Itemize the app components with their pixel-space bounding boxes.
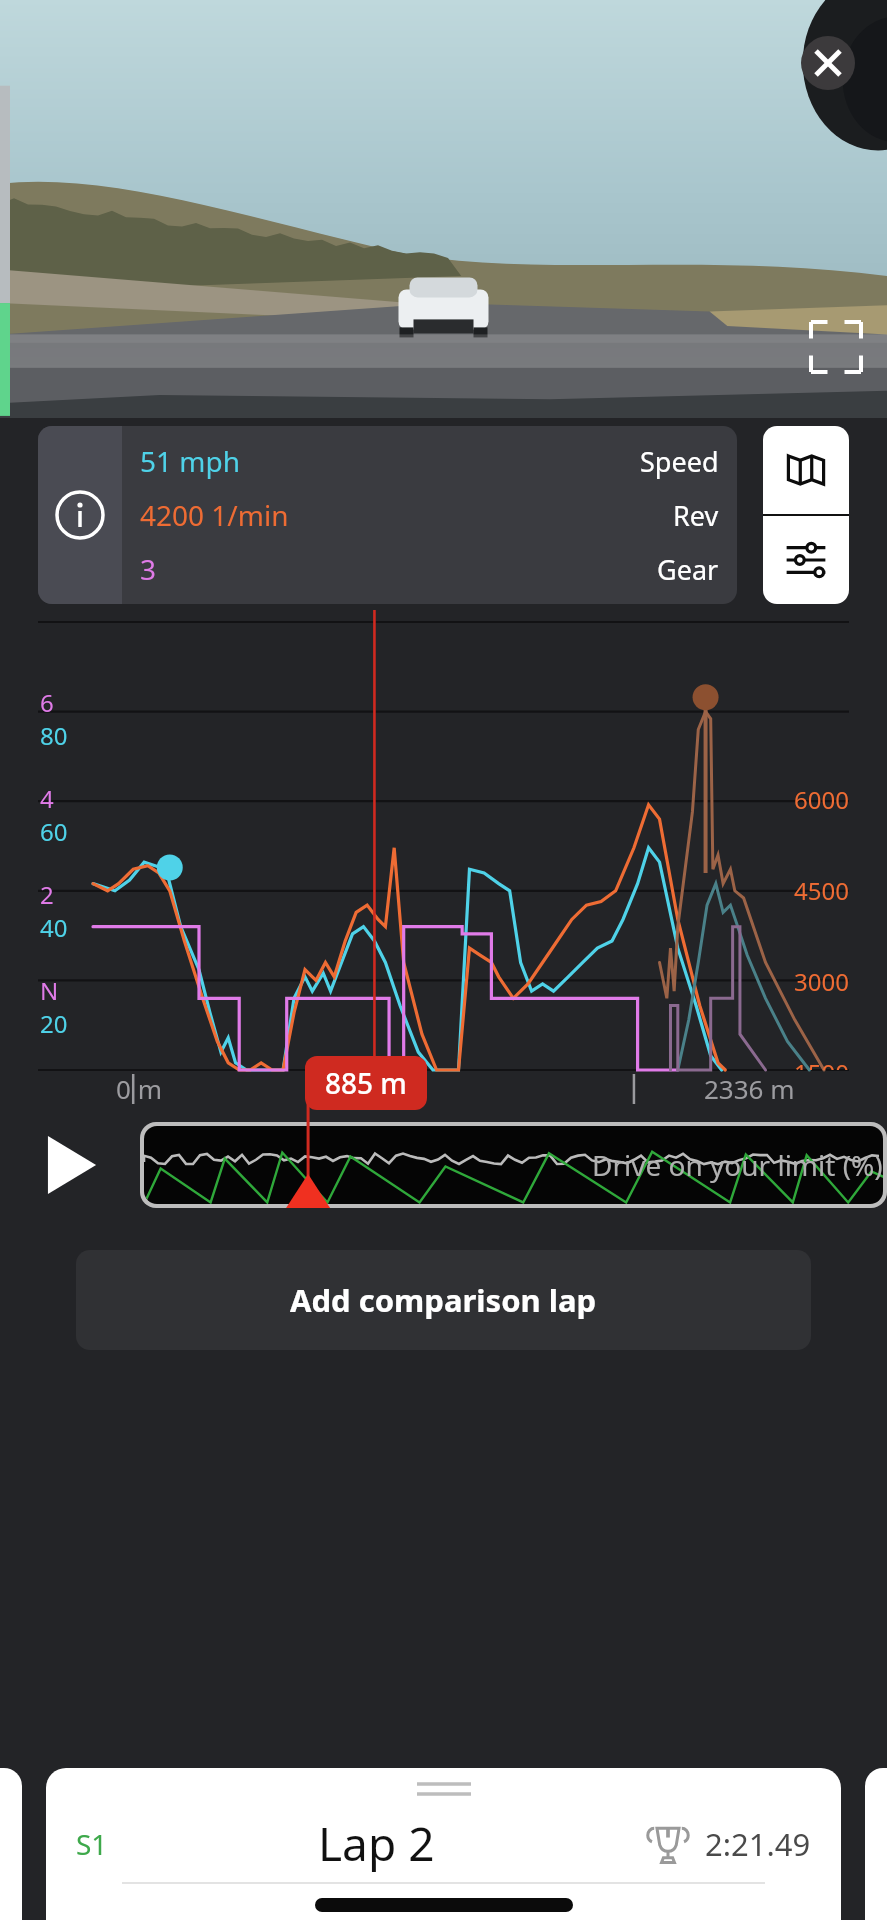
button[interactable]: Play <box>34 1129 106 1201</box>
staticText: S1 <box>76 1825 108 1863</box>
button[interactable]: 51 mph <box>38 426 737 604</box>
staticText: 0 m <box>116 1071 162 1106</box>
staticText: N <box>40 974 59 1007</box>
staticText: Drive on your limit (%) <box>592 1146 883 1184</box>
staticText: Lap 2 <box>318 1812 435 1875</box>
staticText: 885 m <box>325 1064 407 1102</box>
staticText: 4500 <box>794 874 849 907</box>
button[interactable]: Map <box>763 426 849 514</box>
staticText: 3000 <box>794 965 849 998</box>
staticText: 1500 <box>794 1056 849 1070</box>
staticText: 40 <box>40 911 68 944</box>
staticText: 4200 1/min <box>140 496 289 534</box>
staticText: Speed <box>640 443 719 480</box>
button[interactable]: 885 m <box>325 1064 407 1102</box>
staticText: 3 <box>140 550 157 588</box>
button[interactable]: Drive on your limit (%) <box>144 1126 883 1204</box>
button[interactable]: Close <box>801 36 855 90</box>
staticText: 60 <box>40 815 68 848</box>
button[interactable]: S1 <box>46 1768 841 1920</box>
staticText: Rev <box>673 497 719 534</box>
staticText: 80 <box>40 719 68 752</box>
staticText: 6 <box>40 686 54 719</box>
staticText: 20 <box>40 1007 68 1040</box>
staticText: Add comparison lap <box>290 1279 597 1321</box>
staticText: 6000 <box>794 783 849 816</box>
staticText: Gear <box>657 551 719 588</box>
staticText: 2 <box>40 878 54 911</box>
staticText: 2:21.49 <box>705 1823 811 1865</box>
button[interactable]: Add comparison lap <box>76 1250 811 1350</box>
staticText: 2336 m <box>704 1071 795 1106</box>
button[interactable]: Settings <box>763 516 849 604</box>
staticText: 51 mph <box>140 442 241 480</box>
button[interactable]: Fullscreen <box>811 322 861 372</box>
staticText: 4 <box>40 782 54 815</box>
